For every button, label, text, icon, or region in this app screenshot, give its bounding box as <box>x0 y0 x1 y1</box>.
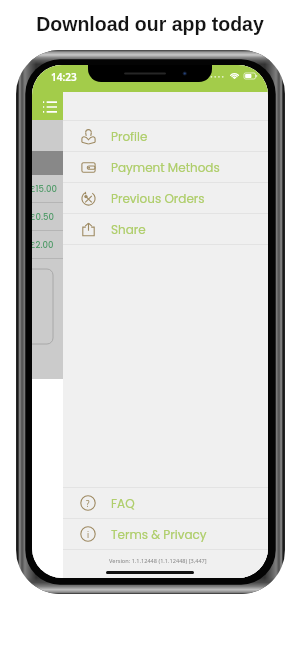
button[interactable]: Payment Methods <box>63 151 268 182</box>
button[interactable]: Previous Orders <box>63 182 268 213</box>
button[interactable]: Share <box>63 213 268 244</box>
staticText: Payment Methods <box>111 159 220 176</box>
staticText: £15.00 <box>32 183 57 195</box>
button[interactable]: i <box>63 518 268 549</box>
staticText: Download our app today <box>0 13 300 35</box>
staticText: Version: 1.1.12448 (1.1.12448) [3,447] <box>109 557 207 565</box>
staticText: Previous Orders <box>111 190 205 207</box>
staticText: Terms & Privacy <box>111 526 207 543</box>
staticText: Share <box>111 221 146 238</box>
button[interactable]: ? <box>63 487 268 518</box>
staticText: 14:23 <box>51 70 77 84</box>
button[interactable]: Menu <box>40 97 60 117</box>
staticText: ? <box>86 498 90 509</box>
staticText: FAQ <box>111 495 135 512</box>
staticText: £0.50 <box>32 211 54 223</box>
button[interactable]: Profile <box>63 120 268 151</box>
staticText: i <box>87 529 90 540</box>
staticText: Profile <box>111 128 148 145</box>
staticText: £2.00 <box>32 239 54 251</box>
